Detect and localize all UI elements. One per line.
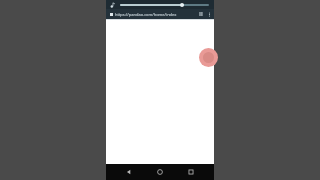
button[interactable]: Profile badge [199,48,218,67]
button[interactable]: Now playing [109,1,117,9]
button[interactable]: More options [205,10,213,18]
button[interactable]: Home [152,164,168,180]
button[interactable]: Recent apps [183,164,199,180]
button[interactable]: Pause [197,10,205,18]
button[interactable]: https://pandao.com/home/index [115,9,196,19]
button[interactable]: Site info [108,11,114,17]
staticText: https://pandao.com/home/index [115,12,177,17]
button[interactable]: Back [121,164,137,180]
button[interactable]: Seek bar [120,0,209,9]
